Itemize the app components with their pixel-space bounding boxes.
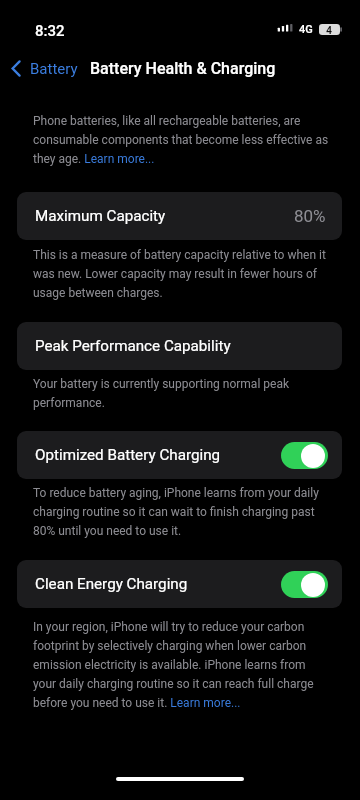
staticText: Clean Energy Charging: [35, 575, 188, 593]
staticText: In your region, iPhone will try to reduc…: [33, 616, 330, 711]
staticText: This is a measure of battery capacity re…: [33, 244, 330, 301]
staticText: Battery Health & Charging: [90, 59, 276, 78]
other: Back to Battery: [11, 60, 21, 77]
staticText: 80%: [294, 206, 326, 226]
staticText: Battery: [30, 60, 78, 78]
staticText: To reduce battery aging, iPhone learns f…: [33, 482, 330, 539]
staticText: Phone batteries, like all rechargeable b…: [33, 110, 330, 167]
staticText: Maximum Capacity: [35, 207, 166, 225]
button[interactable]: Toggle setting: [281, 571, 328, 598]
button[interactable]: Optimized Battery Charging: [17, 431, 342, 479]
staticText: Optimized Battery Charging: [35, 446, 221, 464]
button[interactable]: Clean Energy Charging: [17, 560, 342, 608]
button[interactable]: Maximum Capacity: [17, 192, 342, 240]
staticText: Your battery is currently supporting nor…: [33, 373, 330, 411]
button[interactable]: Peak Performance Capability: [17, 322, 342, 370]
staticText: Peak Performance Capability: [35, 337, 231, 355]
button[interactable]: Back to Battery: [6, 50, 82, 81]
staticText: 4: [326, 24, 333, 35]
staticText: 8:32: [35, 22, 65, 40]
staticText: 4G: [299, 23, 313, 36]
button[interactable]: Toggle setting: [281, 442, 328, 469]
